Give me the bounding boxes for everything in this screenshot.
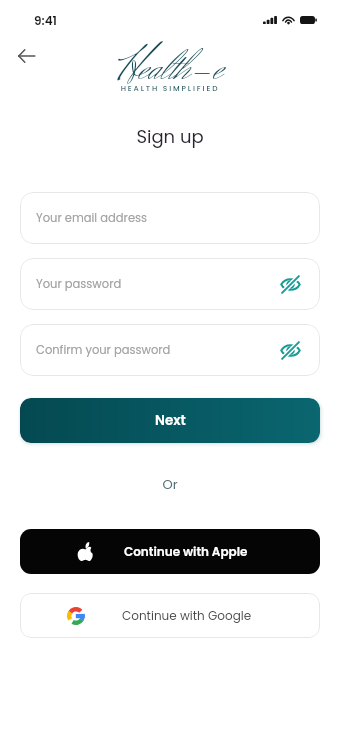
staticText: Your password	[36, 276, 122, 292]
button[interactable]: Continue with Google	[20, 593, 320, 638]
button[interactable]: Continue with Apple	[20, 529, 320, 574]
staticText: HEALTH SIMPLIFIED	[0, 83, 340, 93]
staticText: Next	[155, 411, 186, 430]
staticText: Confirm your password	[36, 342, 171, 358]
button[interactable]: Show password	[280, 340, 301, 361]
button[interactable]: Your password	[20, 258, 320, 310]
button[interactable]: Back	[16, 46, 36, 66]
staticText: Continue with Google	[122, 607, 252, 624]
button[interactable]: Show password	[280, 274, 301, 295]
staticText: Your email address	[36, 210, 148, 226]
staticText: Continue with Apple	[124, 543, 248, 560]
staticText: Health-e	[0, 37, 340, 101]
button[interactable]: Your email address	[20, 192, 320, 244]
button[interactable]: Next	[20, 398, 320, 443]
button[interactable]: Confirm your password	[20, 324, 320, 376]
staticText: Or	[20, 475, 320, 493]
staticText: Sign up	[0, 124, 340, 149]
staticText: 9:41	[34, 12, 57, 29]
